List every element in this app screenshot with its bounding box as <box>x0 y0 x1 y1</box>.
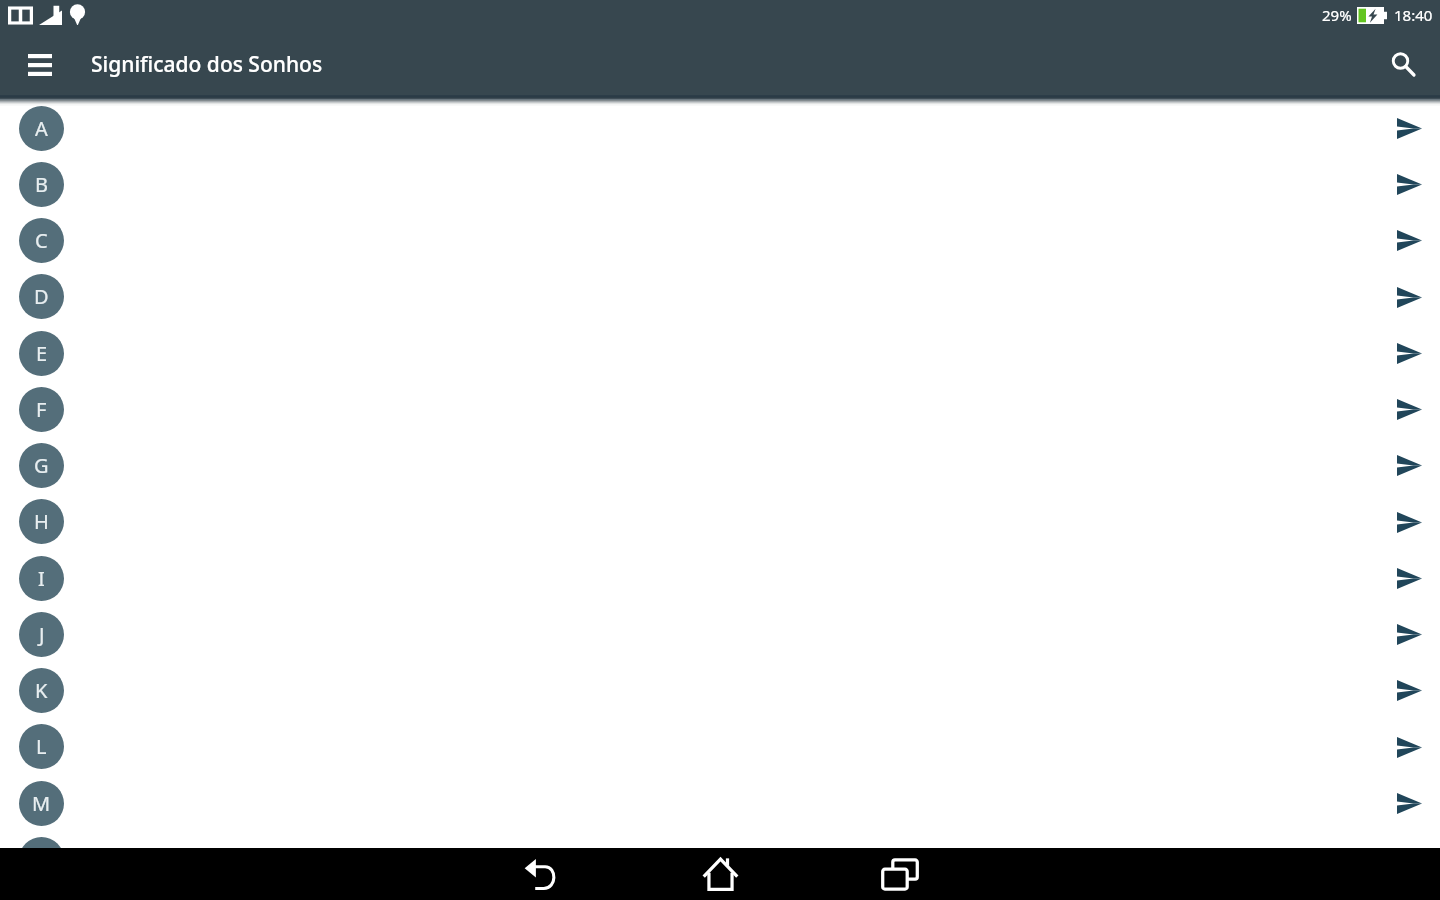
staticText: B <box>35 171 48 198</box>
staticText: L <box>36 733 47 760</box>
button[interactable]: Open letter K <box>1387 668 1431 712</box>
staticText: M <box>32 790 51 817</box>
button[interactable]: Open letter H <box>1387 500 1431 544</box>
button[interactable]: E <box>0 325 1440 381</box>
button[interactable]: B <box>0 156 1440 212</box>
button[interactable]: Back <box>450 848 630 900</box>
button[interactable]: Recent apps <box>810 848 990 900</box>
button[interactable]: Open letter M <box>1387 781 1431 825</box>
button[interactable]: Open letter E <box>1387 331 1431 375</box>
staticText: N <box>34 846 50 873</box>
button[interactable]: M <box>0 775 1440 831</box>
staticText: F <box>36 396 47 423</box>
button[interactable]: Search <box>1374 34 1432 95</box>
button[interactable]: N <box>0 831 1440 887</box>
staticText: H <box>34 508 49 535</box>
button[interactable]: G <box>0 437 1440 493</box>
staticText: J <box>39 621 45 648</box>
button[interactable]: Open letter I <box>1387 556 1431 600</box>
button[interactable]: J <box>0 606 1440 662</box>
staticText: K <box>35 677 48 704</box>
button[interactable]: Open letter J <box>1387 612 1431 656</box>
button[interactable]: D <box>0 268 1440 325</box>
button[interactable]: Open letter G <box>1387 443 1431 487</box>
staticText: E <box>36 340 48 367</box>
button[interactable]: Open letter A <box>1387 106 1431 150</box>
button[interactable]: Open letter F <box>1387 387 1431 431</box>
staticText: D <box>34 283 49 310</box>
button[interactable]: H <box>0 493 1440 550</box>
button[interactable]: I <box>0 550 1440 606</box>
staticText: G <box>34 452 49 479</box>
button[interactable]: Open navigation menu <box>0 34 80 95</box>
button[interactable]: Home <box>630 848 810 900</box>
staticText: C <box>35 227 48 254</box>
button[interactable]: Open letter C <box>1387 218 1431 262</box>
button[interactable]: F <box>0 381 1440 437</box>
button[interactable]: Open letter L <box>1387 725 1431 769</box>
staticText: A <box>35 115 48 142</box>
button[interactable]: Open letter N <box>1387 837 1431 881</box>
button[interactable]: Open letter B <box>1387 162 1431 206</box>
button[interactable]: C <box>0 212 1440 268</box>
button[interactable]: L <box>0 718 1440 775</box>
staticText: Significado dos Sonhos <box>91 50 323 79</box>
button[interactable]: A <box>0 100 1440 156</box>
button[interactable]: Open letter D <box>1387 275 1431 319</box>
staticText: 18:40 <box>1394 5 1433 25</box>
staticText: 29% <box>1322 5 1352 25</box>
button[interactable]: K <box>0 662 1440 718</box>
staticText: I <box>38 565 45 592</box>
